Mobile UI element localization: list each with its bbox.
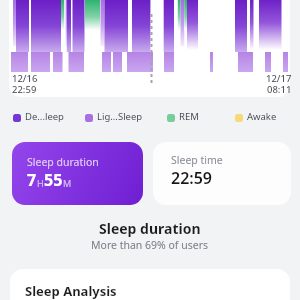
- staticText: 22:59: [12, 83, 37, 96]
- staticText: More than 69% of users: [91, 238, 209, 252]
- staticText: H: [37, 177, 44, 189]
- staticText: 08:11: [267, 83, 292, 96]
- staticText: Sleep duration: [99, 219, 201, 238]
- staticText: Sleep duration: [27, 155, 99, 169]
- button[interactable]: Sleep Analysis: [10, 269, 290, 300]
- button[interactable]: Sleep duration: [0, 219, 300, 252]
- staticText: 22:59: [171, 167, 213, 189]
- staticText: De...leep: [25, 110, 64, 123]
- staticText: 12/16: [12, 72, 38, 85]
- staticText: Sleep Analysis: [25, 282, 117, 300]
- staticText: M: [63, 177, 72, 189]
- staticText: Awake: [247, 110, 277, 123]
- staticText: 12/17: [266, 72, 292, 85]
- button[interactable]: Sleep duration: [12, 142, 143, 205]
- staticText: Sleep time: [171, 153, 223, 167]
- staticText: REM: [179, 110, 199, 123]
- staticText: Lig...Sleep: [97, 110, 143, 123]
- staticText: 55: [44, 169, 63, 191]
- button[interactable]: Sleep time: [153, 142, 291, 205]
- staticText: 7: [27, 169, 37, 191]
